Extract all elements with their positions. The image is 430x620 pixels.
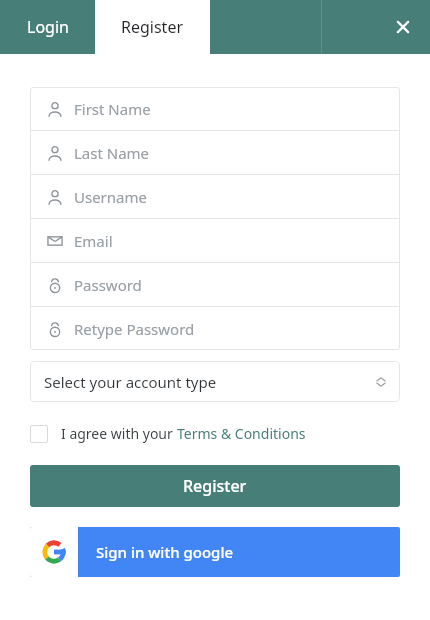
staticText: Email <box>74 231 113 251</box>
button[interactable]: Retype Password <box>30 307 400 350</box>
button[interactable]: Register <box>95 0 210 54</box>
staticText: Password <box>74 275 142 295</box>
staticText: Login <box>27 16 69 38</box>
staticText: Username <box>74 187 147 207</box>
staticText: Retype Password <box>74 319 195 339</box>
button[interactable]: Register <box>30 465 400 507</box>
button[interactable]: Email <box>30 219 400 262</box>
button[interactable]: Last Name <box>30 131 400 174</box>
staticText: First Name <box>74 99 151 119</box>
button[interactable]: Username <box>30 175 400 218</box>
button[interactable]: Select your account type <box>30 361 400 402</box>
button[interactable]: Login <box>0 0 95 54</box>
staticText: I agree with your <box>61 424 177 443</box>
button[interactable]: I agree with your <box>30 424 400 443</box>
button[interactable]: First Name <box>30 87 400 130</box>
staticText: Register <box>121 16 184 38</box>
button[interactable]: Close <box>376 0 430 54</box>
button[interactable]: Password <box>30 263 400 306</box>
button[interactable]: Terms & Conditions <box>177 424 306 443</box>
staticText: Last Name <box>74 143 150 163</box>
button[interactable]: Sign in with google <box>30 527 400 577</box>
staticText: Select your account type <box>44 372 217 392</box>
staticText: Register <box>183 475 247 497</box>
staticText: Sign in with google <box>96 542 234 562</box>
